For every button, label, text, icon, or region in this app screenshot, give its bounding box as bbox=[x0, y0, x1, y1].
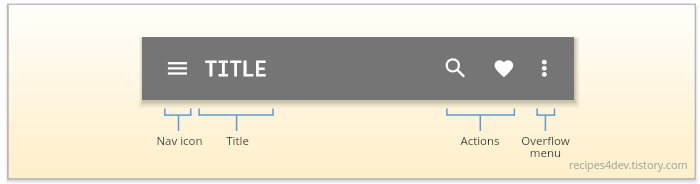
button[interactable]: More options bbox=[527, 49, 563, 87]
staticText: Actions bbox=[460, 133, 500, 149]
button[interactable]: Favorite bbox=[486, 49, 522, 87]
staticText: TITLE bbox=[205, 55, 268, 81]
button[interactable]: Search bbox=[437, 49, 473, 87]
staticText: Title bbox=[226, 133, 249, 149]
button[interactable]: Navigation menu bbox=[159, 49, 195, 87]
staticText: recipes4dev.tistory.com bbox=[569, 157, 688, 172]
staticText: Nav icon bbox=[156, 133, 203, 149]
staticText: Overflow menu bbox=[521, 133, 570, 161]
